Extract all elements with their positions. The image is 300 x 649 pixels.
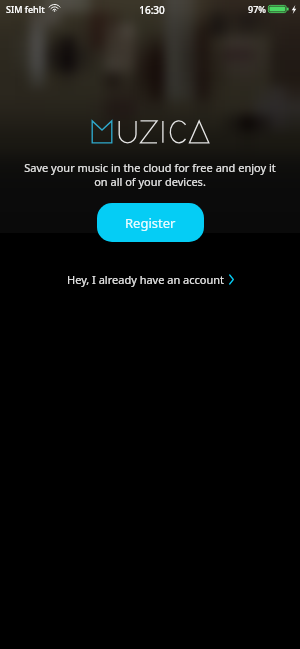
staticText: 97% (248, 3, 266, 15)
other: Wi-Fi signal (50, 4, 59, 12)
staticText: SIM fehlt (6, 3, 45, 15)
staticText: Save your music in the cloud for free an… (16, 160, 284, 190)
other: Go to sign in (229, 275, 234, 284)
other: Battery 97 percent, charging (268, 5, 289, 13)
button[interactable]: Register (97, 203, 204, 242)
staticText: 16:30 (2, 3, 300, 17)
staticText: Register (125, 214, 176, 232)
staticText: Hey, I already have an account (67, 272, 225, 287)
button[interactable]: Hey, I already have an account (0, 268, 300, 290)
